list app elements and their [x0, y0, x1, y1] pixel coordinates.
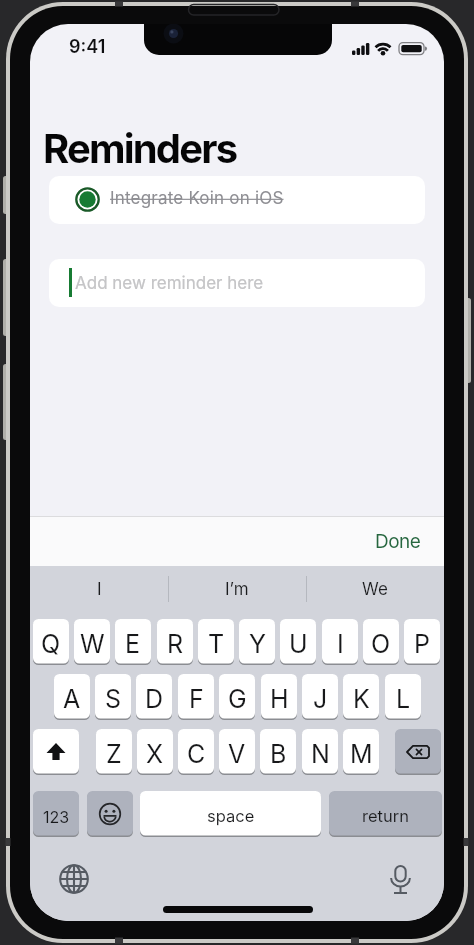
staticText: Z — [106, 739, 122, 769]
button[interactable]: I — [322, 619, 358, 665]
button[interactable]: D — [136, 674, 172, 720]
staticText: Q — [41, 629, 61, 659]
button[interactable]: space — [140, 791, 321, 837]
button[interactable]: return — [329, 791, 442, 837]
button[interactable]: X — [137, 729, 173, 775]
button[interactable]: I — [30, 566, 168, 619]
staticText: J — [313, 684, 328, 714]
button[interactable]: E — [115, 619, 151, 665]
staticText: C — [187, 739, 206, 769]
button[interactable]: Integrate Koin on iOS — [49, 176, 425, 224]
staticText: T — [208, 629, 225, 659]
button[interactable]: F — [178, 674, 214, 720]
staticText: S — [105, 684, 122, 714]
button[interactable]: U — [280, 619, 316, 665]
staticText: space — [207, 806, 255, 826]
staticText: U — [289, 629, 308, 659]
button[interactable]: L — [385, 674, 421, 720]
button[interactable]: Y — [239, 619, 275, 665]
staticText: N — [311, 739, 330, 769]
button[interactable]: Z — [96, 729, 132, 775]
button[interactable]: S — [95, 674, 131, 720]
button[interactable] — [87, 791, 133, 837]
button[interactable]: V — [219, 729, 255, 775]
staticText: F — [189, 684, 204, 714]
staticText: P — [414, 629, 430, 659]
staticText: V — [228, 739, 246, 769]
staticText: Reminders — [43, 124, 237, 172]
button[interactable]: P — [404, 619, 440, 665]
staticText: I — [97, 579, 102, 600]
staticText: Y — [249, 629, 266, 659]
staticText: Done — [375, 530, 421, 553]
staticText: K — [353, 684, 370, 714]
button[interactable]: A — [54, 674, 90, 720]
staticText: W — [80, 629, 105, 659]
staticText: Integrate Koin on iOS — [110, 188, 284, 209]
button[interactable]: Q — [33, 619, 69, 665]
button[interactable] — [33, 729, 79, 775]
button[interactable]: M — [343, 729, 379, 775]
button[interactable]: C — [178, 729, 214, 775]
staticText: Add new reminder here — [75, 273, 264, 294]
staticText: L — [396, 684, 411, 714]
button[interactable]: H — [261, 674, 297, 720]
staticText: G — [228, 684, 247, 714]
button[interactable]: Done — [375, 530, 421, 553]
button[interactable]: N — [302, 729, 338, 775]
button[interactable]: K — [343, 674, 379, 720]
staticText: return — [362, 806, 409, 826]
staticText: A — [63, 684, 81, 714]
staticText: R — [167, 629, 184, 659]
staticText: B — [270, 739, 287, 769]
button[interactable]: I’m — [168, 566, 306, 619]
button[interactable]: O — [363, 619, 399, 665]
button[interactable]: G — [219, 674, 255, 720]
staticText: M — [350, 739, 373, 769]
button[interactable] — [380, 859, 420, 899]
staticText: X — [146, 739, 164, 769]
staticText: I’m — [225, 579, 249, 600]
button[interactable] — [54, 859, 94, 899]
staticText: I — [337, 629, 344, 659]
button[interactable]: R — [157, 619, 193, 665]
staticText: E — [125, 629, 141, 659]
staticText: O — [371, 629, 391, 659]
staticText: D — [145, 684, 164, 714]
button[interactable]: 123 — [33, 791, 79, 837]
staticText: H — [270, 684, 289, 714]
staticText: We — [362, 579, 388, 600]
button[interactable]: J — [302, 674, 338, 720]
button[interactable]: T — [198, 619, 234, 665]
button[interactable]: B — [260, 729, 296, 775]
button[interactable] — [395, 729, 441, 775]
staticText: 9:41 — [69, 36, 106, 58]
staticText: 123 — [43, 807, 70, 826]
button[interactable]: W — [74, 619, 110, 665]
button[interactable]: Add new reminder here — [49, 259, 425, 307]
button[interactable]: We — [306, 566, 444, 619]
